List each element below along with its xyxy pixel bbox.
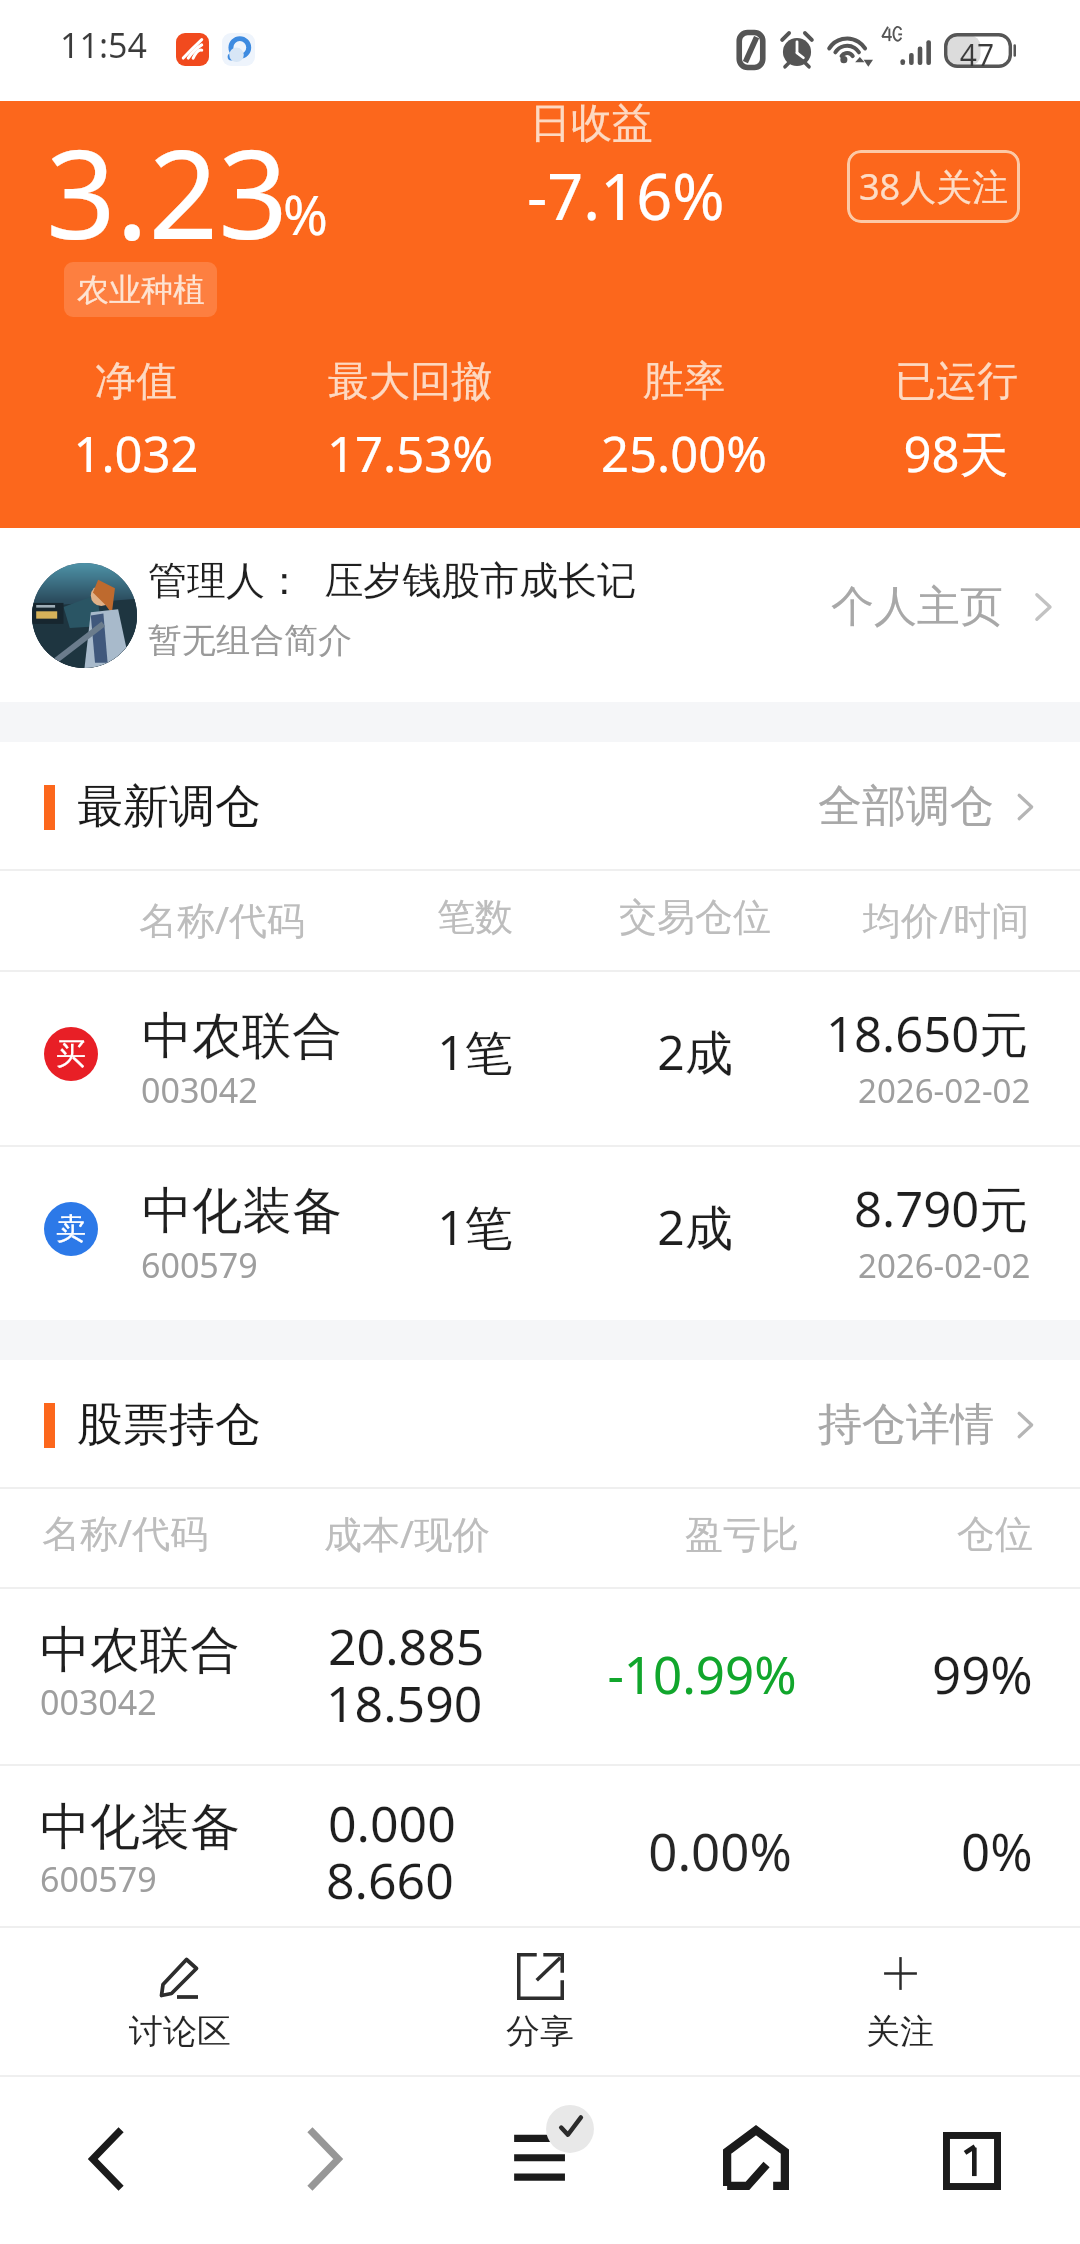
staticText: 暂无组合简介 <box>148 619 352 662</box>
staticText: 买 <box>56 1035 86 1073</box>
staticText: 2026-02-02 <box>858 1243 1031 1288</box>
staticText: 17.53% <box>327 420 493 487</box>
staticText: 均价/时间 <box>796 893 1080 945</box>
button[interactable]: 卖 <box>0 1147 1080 1320</box>
button[interactable]: Tabs <box>864 2077 1080 2244</box>
staticText: 38人关注 <box>859 162 1009 211</box>
staticText: 农业种植 <box>77 270 205 310</box>
staticText: 全部调仓 <box>818 779 994 834</box>
staticText: 11:54 <box>60 22 147 68</box>
staticText: 净值 <box>95 356 177 408</box>
staticText: 003042 <box>40 1679 157 1725</box>
staticText: 管理人： 压岁钱股市成长记 <box>148 552 637 605</box>
staticText: 盈亏比 <box>592 1511 892 1559</box>
staticText: 2成 <box>545 1019 845 1085</box>
staticText: 中农联合 <box>40 1619 240 1682</box>
staticText: 成本/现价 <box>324 1507 491 1559</box>
staticText: 1笔 <box>325 1194 625 1260</box>
staticText: 18.590 <box>326 1669 483 1737</box>
staticText: 名称/代码 <box>0 893 447 945</box>
staticText: 1笔 <box>325 1019 625 1085</box>
button[interactable]: 中农联合 <box>0 1589 1080 1764</box>
button[interactable]: 讨论区 <box>90 1928 270 2075</box>
staticText: 最新调仓 <box>77 778 261 836</box>
staticText: 已运行 <box>895 356 1018 408</box>
staticText: 25.00% <box>601 420 767 487</box>
staticText: 3.23 <box>46 109 289 275</box>
staticText: 600579 <box>40 1856 157 1902</box>
staticText: 关注 <box>810 2010 990 2053</box>
staticText: 0.000 <box>328 1789 456 1857</box>
button[interactable]: 关注 <box>810 1928 990 2075</box>
staticText: 8.660 <box>326 1846 454 1914</box>
button[interactable]: Menu <box>441 2077 657 2244</box>
staticText: 中化装备 <box>40 1796 240 1859</box>
staticText: 003042 <box>141 1067 258 1113</box>
staticText: 0% <box>961 1816 1033 1885</box>
staticText: 中农联合 <box>142 1005 342 1068</box>
staticText: 600579 <box>141 1242 258 1288</box>
staticText: 中化装备 <box>142 1180 342 1243</box>
staticText: 交易仓位 <box>545 893 845 941</box>
button[interactable]: Home <box>648 2077 864 2244</box>
staticText: 名称/代码 <box>42 1506 209 1558</box>
staticText: 讨论区 <box>90 2010 270 2053</box>
staticText: 18.650元 <box>826 1000 1029 1067</box>
staticText: 分享 <box>450 2010 630 2053</box>
button[interactable]: Forward <box>218 2077 434 2244</box>
staticText: -7.16% <box>527 153 725 239</box>
staticText: 卖 <box>56 1210 86 1248</box>
staticText: 99% <box>932 1639 1033 1708</box>
staticText: 持仓详情 <box>818 1397 994 1452</box>
staticText: 98天 <box>903 420 1009 487</box>
staticText: 个人主页 <box>831 580 1003 634</box>
staticText: 最大回撤 <box>328 356 492 408</box>
button[interactable]: 买 <box>0 972 1080 1145</box>
button[interactable]: 持仓详情 <box>818 1397 1046 1452</box>
button[interactable]: 分享 <box>450 1928 630 2075</box>
staticText: 日收益 <box>530 98 653 150</box>
staticText: % <box>283 177 328 251</box>
staticText: 股票持仓 <box>77 1396 261 1454</box>
staticText: 胜率 <box>643 356 725 408</box>
staticText: 20.885 <box>328 1612 485 1680</box>
staticText: 47 <box>944 34 1010 69</box>
staticText: 8.790元 <box>854 1175 1029 1242</box>
button[interactable]: 全部调仓 <box>818 779 1046 834</box>
staticText: -10.99% <box>552 1639 852 1708</box>
staticText: 笔数 <box>325 893 625 941</box>
staticText: 1.032 <box>73 420 199 487</box>
button[interactable]: 管理人： 压岁钱股市成长记 <box>0 528 1080 702</box>
button[interactable]: 中化装备 <box>0 1766 1080 1926</box>
staticText: 0.00% <box>570 1816 870 1885</box>
staticText: 仓位 <box>957 1510 1033 1558</box>
staticText: 2026-02-02 <box>858 1068 1031 1113</box>
staticText: 2成 <box>545 1194 845 1260</box>
button[interactable]: Back <box>0 2077 213 2244</box>
button[interactable]: 38人关注 <box>847 150 1020 223</box>
